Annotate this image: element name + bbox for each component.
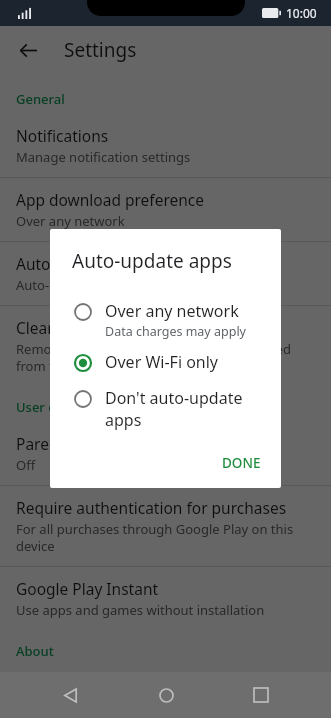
staticText: Over Wi-Fi only xyxy=(105,351,219,373)
staticText: Off xyxy=(16,456,36,474)
staticText: Notifications xyxy=(16,125,109,146)
staticText: Over any network xyxy=(16,212,125,230)
button[interactable]: Over Wi-Fi only xyxy=(50,345,281,381)
staticText: Auto-update apps xyxy=(16,253,147,274)
staticText: About xyxy=(16,642,54,660)
staticText: Don't auto-update apps xyxy=(105,387,269,431)
button[interactable]: Auto-update apps xyxy=(0,242,331,305)
staticText: Settings xyxy=(64,37,137,63)
staticText: Google Play Instant xyxy=(16,578,159,599)
staticText: Parental controls xyxy=(16,433,140,454)
staticText: DONE xyxy=(222,454,261,472)
button[interactable]: Recent apps xyxy=(235,672,287,718)
staticText: For all purchases through Google Play on… xyxy=(16,520,315,555)
button[interactable]: Require authentication for purchases xyxy=(0,486,331,566)
button[interactable]: Clear local search history xyxy=(0,306,331,386)
staticText: 10:00 xyxy=(286,5,317,21)
staticText: General xyxy=(16,90,65,108)
button[interactable]: Over any network xyxy=(50,294,281,345)
button[interactable]: Home xyxy=(140,672,192,718)
staticText: Clear local search history xyxy=(16,317,198,338)
button[interactable]: Don't auto-update apps xyxy=(50,381,281,436)
button[interactable]: Back xyxy=(8,30,48,70)
staticText: Use apps and games without installation xyxy=(16,601,265,619)
staticText: Over any network xyxy=(105,300,239,322)
button[interactable]: App download preference xyxy=(0,178,331,241)
staticText: Remove all the searches you have perform… xyxy=(16,340,315,375)
button[interactable]: DONE xyxy=(212,446,271,480)
staticText: Require authentication for purchases xyxy=(16,497,287,518)
staticText: User controls xyxy=(16,398,99,416)
staticText: Auto-update apps xyxy=(72,248,232,274)
staticText: App download preference xyxy=(16,189,205,210)
button[interactable]: Back xyxy=(44,672,96,718)
staticText: Auto-update apps over Wi-Fi only xyxy=(16,276,218,294)
button[interactable]: Notifications xyxy=(0,114,331,177)
button[interactable]: Parental controls xyxy=(0,422,331,485)
button[interactable]: Google Play Instant xyxy=(0,567,331,630)
staticText: Manage notification settings xyxy=(16,148,191,166)
staticText: Data charges may apply xyxy=(105,323,246,340)
